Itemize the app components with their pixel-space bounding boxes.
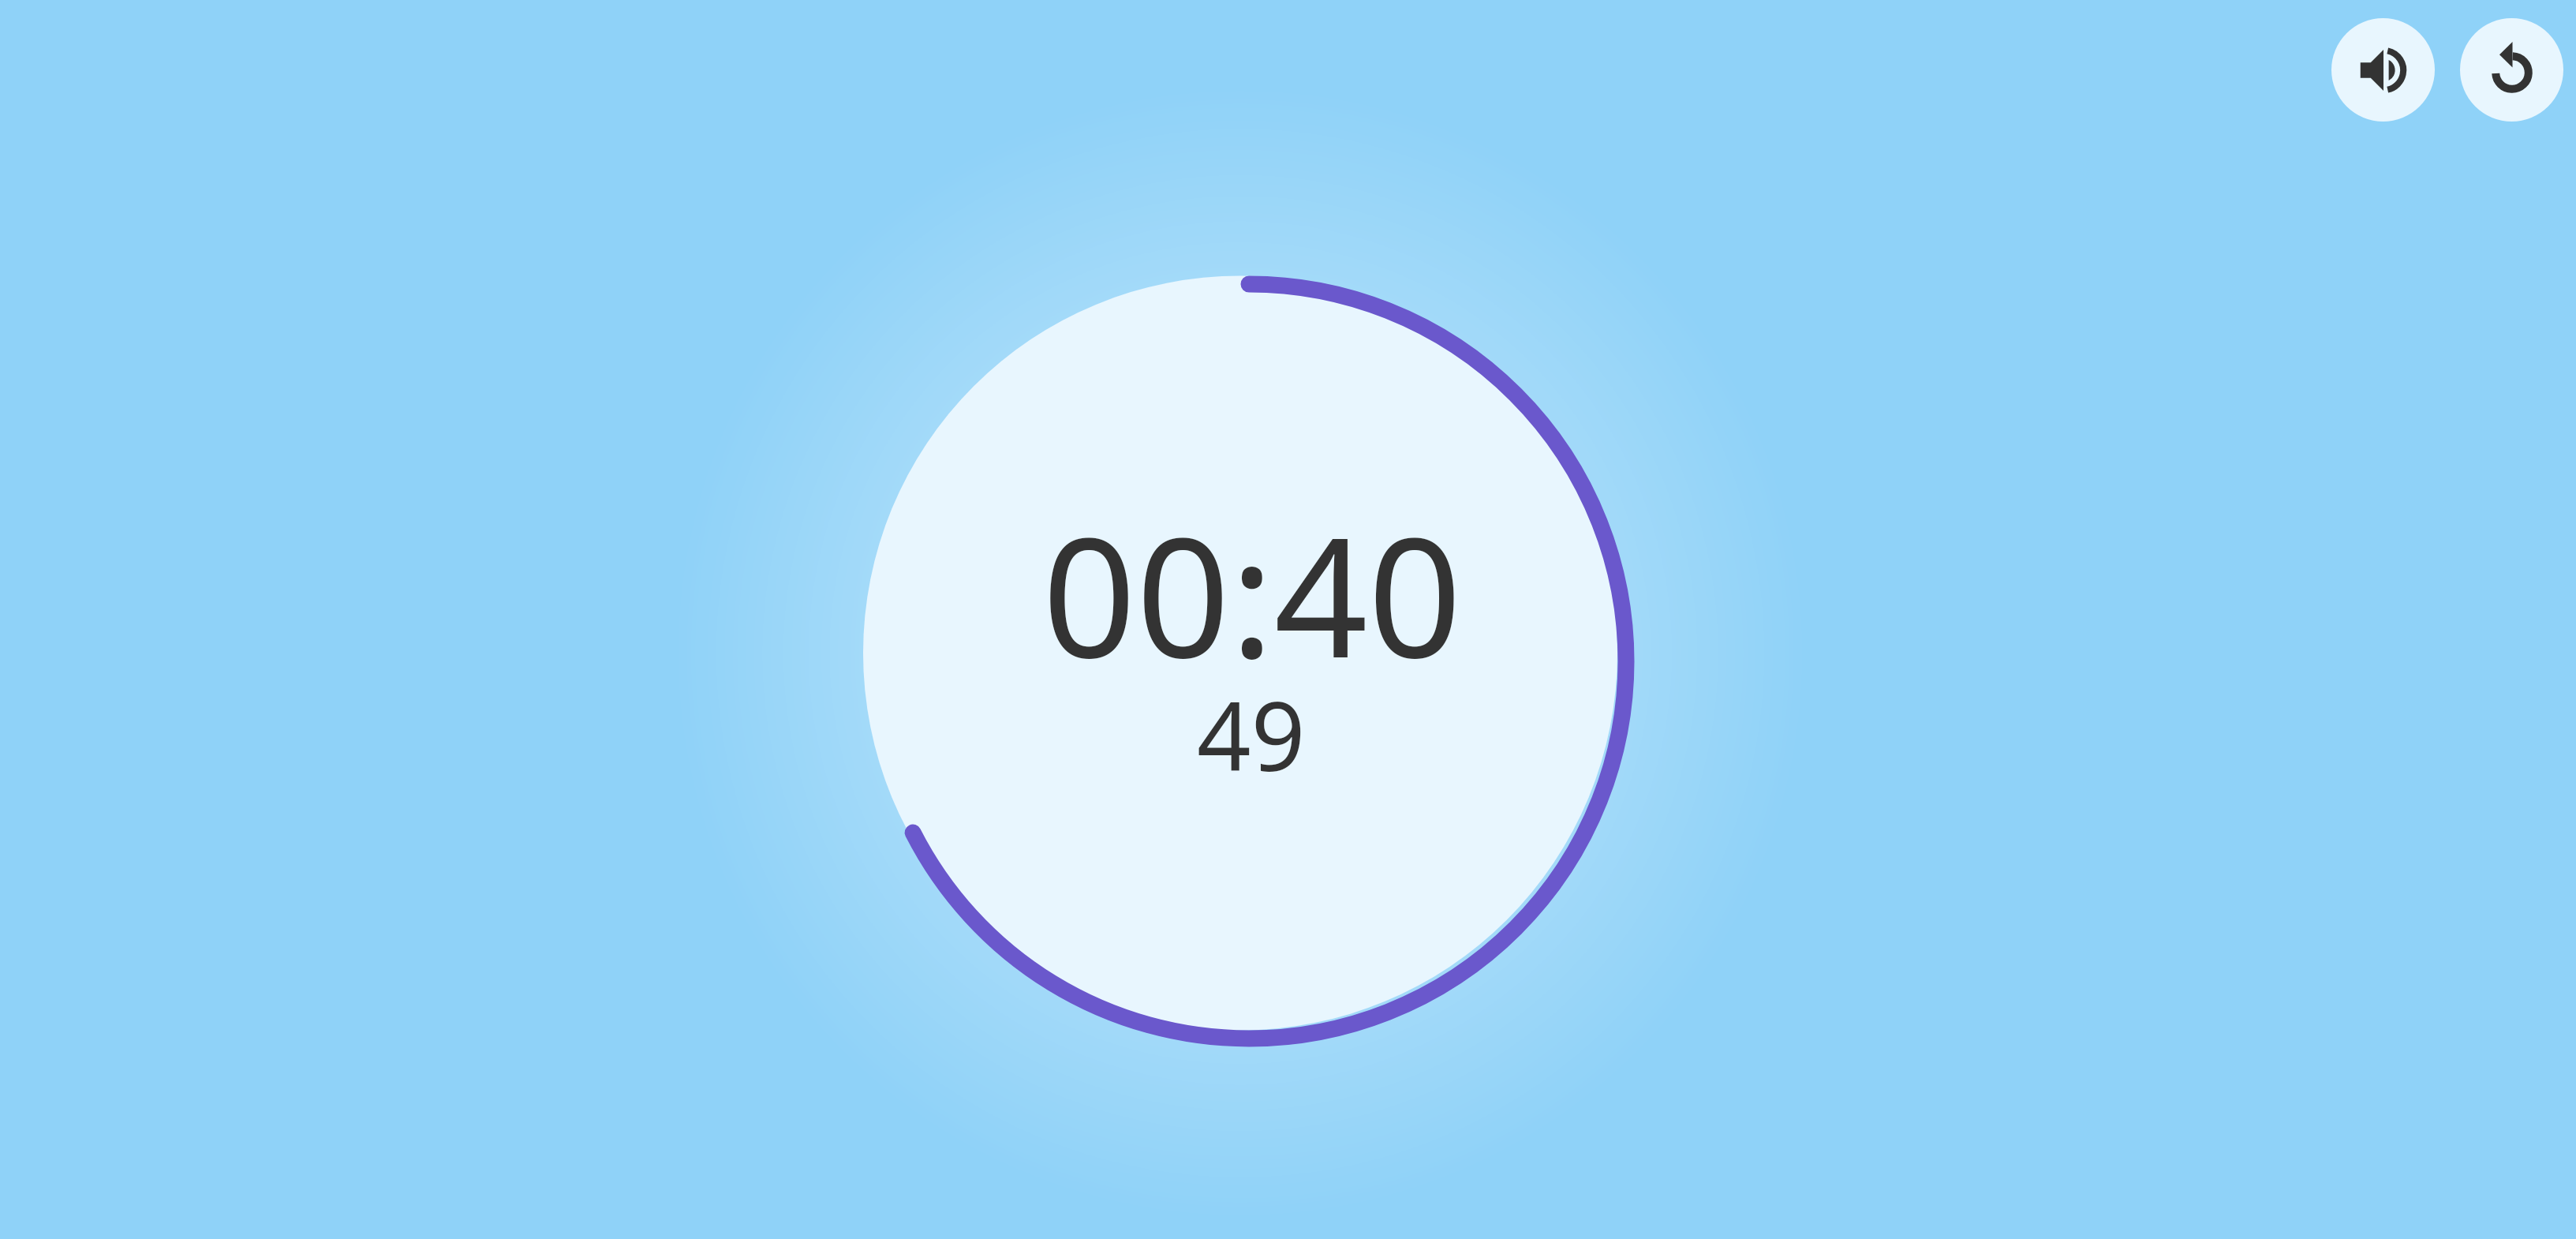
button[interactable]	[2460, 18, 2563, 122]
button[interactable]	[2331, 18, 2435, 122]
staticText: 00:40	[1042, 482, 1462, 706]
staticText: 49	[1197, 670, 1306, 799]
